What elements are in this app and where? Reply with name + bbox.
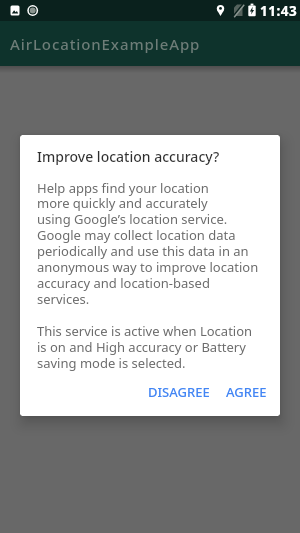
staticText: DISAGREE <box>148 383 210 401</box>
staticText: Help apps find your location more quickl… <box>37 179 259 372</box>
staticText: AirLocationExampleApp <box>10 34 201 54</box>
staticText: Improve location accuracy? <box>37 147 220 166</box>
staticText: 11:43 <box>260 2 298 20</box>
staticText: AGREE <box>226 383 267 401</box>
button[interactable]: AGREE <box>220 379 273 405</box>
button[interactable]: DISAGREE <box>142 379 216 405</box>
